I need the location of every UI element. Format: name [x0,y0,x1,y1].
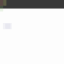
button[interactable]: Inbox [0,4,64,5]
